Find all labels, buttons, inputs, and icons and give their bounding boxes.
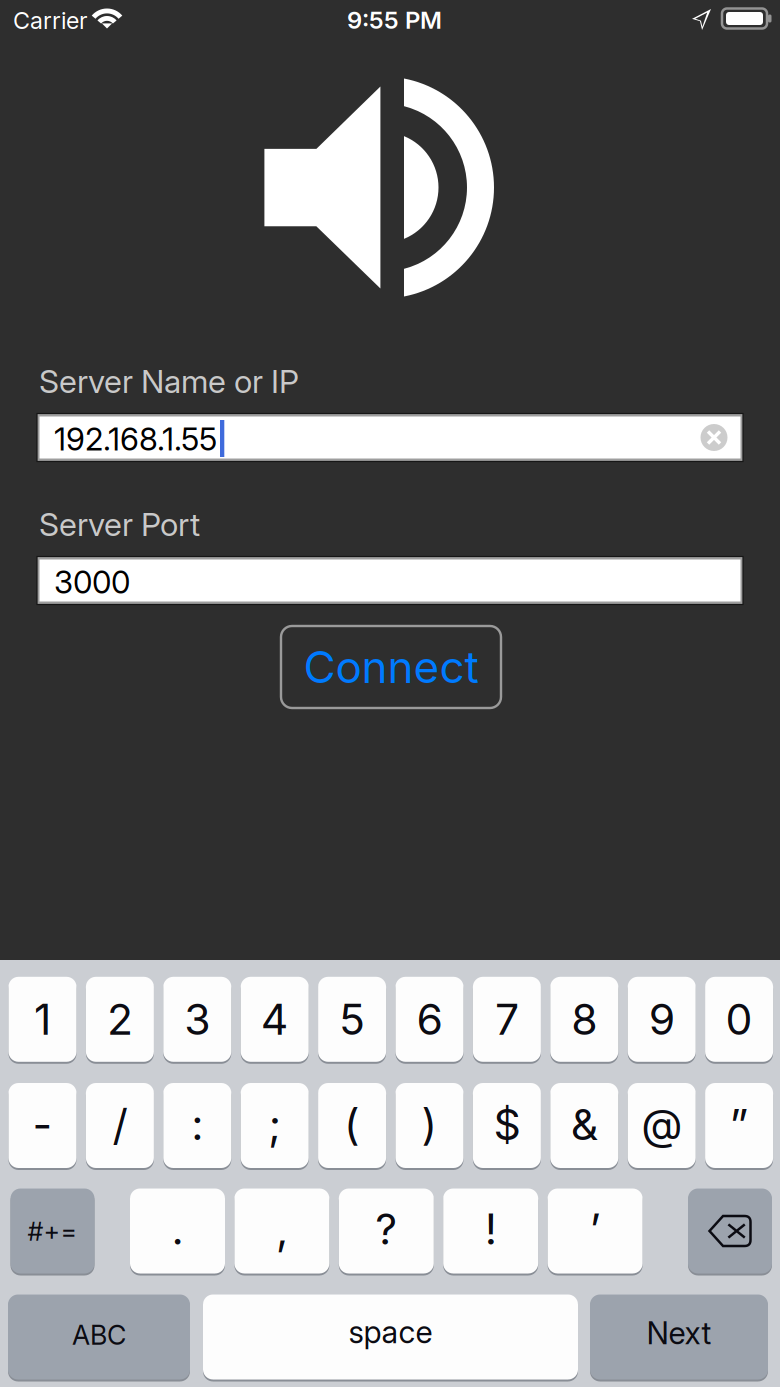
button[interactable]: ! [443, 1187, 538, 1274]
staticText: 3 [184, 993, 210, 1045]
staticText: #+= [27, 1216, 77, 1247]
staticText: ; [268, 1099, 281, 1150]
button[interactable]: Delete [688, 1187, 772, 1274]
staticText: & [571, 1099, 598, 1150]
staticText: ’ [590, 1203, 601, 1255]
staticText: 7 [495, 993, 519, 1045]
staticText: Server Port [39, 505, 200, 544]
button[interactable]: Connect [281, 626, 501, 708]
staticText: 5 [339, 993, 365, 1045]
staticText: ) [421, 1099, 437, 1150]
staticText: ABC [72, 1319, 126, 1351]
button[interactable]: ’ [548, 1187, 643, 1274]
button[interactable]: Next [590, 1293, 768, 1380]
staticText: , [276, 1203, 288, 1255]
staticText: ( [344, 1099, 360, 1150]
button[interactable]: : [163, 1082, 231, 1169]
button[interactable]: Clear text [694, 413, 734, 462]
button[interactable]: ( [318, 1082, 386, 1169]
button[interactable]: , [234, 1187, 329, 1274]
staticText: : [191, 1099, 203, 1150]
staticText: ” [730, 1099, 749, 1150]
button[interactable]: #+= [10, 1187, 94, 1274]
staticText: @ [641, 1099, 682, 1150]
button[interactable]: ABC [8, 1293, 190, 1380]
button[interactable]: 3 [163, 976, 231, 1063]
staticText: ? [375, 1203, 397, 1255]
staticText: Server Name or IP [39, 362, 299, 401]
staticText: space [348, 1313, 432, 1350]
button[interactable]: 7 [473, 976, 541, 1063]
staticText: Connect [303, 640, 478, 694]
staticText: 9 [649, 993, 675, 1045]
button[interactable]: 5 [318, 976, 386, 1063]
staticText: 3000 [54, 563, 130, 601]
staticText: 1 [34, 993, 51, 1045]
staticText: . [171, 1203, 183, 1255]
staticText: Next [646, 1314, 711, 1351]
button[interactable]: ? [339, 1187, 434, 1274]
button[interactable]: 1 [8, 976, 76, 1063]
button[interactable]: $ [473, 1082, 541, 1169]
button[interactable]: & [550, 1082, 618, 1169]
button[interactable]: 6 [395, 976, 463, 1063]
button[interactable]: 2 [86, 976, 154, 1063]
staticText: 192.168.1.55 [54, 420, 217, 458]
button[interactable]: . [130, 1187, 225, 1274]
button[interactable]: ) [395, 1082, 463, 1169]
button[interactable]: / [86, 1082, 154, 1169]
staticText: 9:55 PM [347, 5, 442, 34]
button[interactable]: space [203, 1293, 578, 1380]
staticText: $ [493, 1099, 520, 1150]
staticText: 8 [571, 993, 597, 1045]
staticText: 4 [261, 993, 289, 1045]
staticText: 6 [416, 993, 442, 1045]
button[interactable]: @ [628, 1082, 696, 1169]
staticText: ! [485, 1203, 497, 1255]
staticText: 0 [726, 993, 753, 1045]
button[interactable]: 4 [241, 976, 309, 1063]
staticText: - [32, 1099, 52, 1150]
button[interactable]: 0 [705, 976, 773, 1063]
staticText: 2 [107, 993, 133, 1045]
button[interactable]: ” [705, 1082, 773, 1169]
button[interactable]: 9 [628, 976, 696, 1063]
button[interactable]: - [8, 1082, 76, 1169]
staticText: / [112, 1099, 127, 1150]
button[interactable]: ; [241, 1082, 309, 1169]
button[interactable]: 8 [550, 976, 618, 1063]
staticText: Carrier [13, 6, 88, 35]
